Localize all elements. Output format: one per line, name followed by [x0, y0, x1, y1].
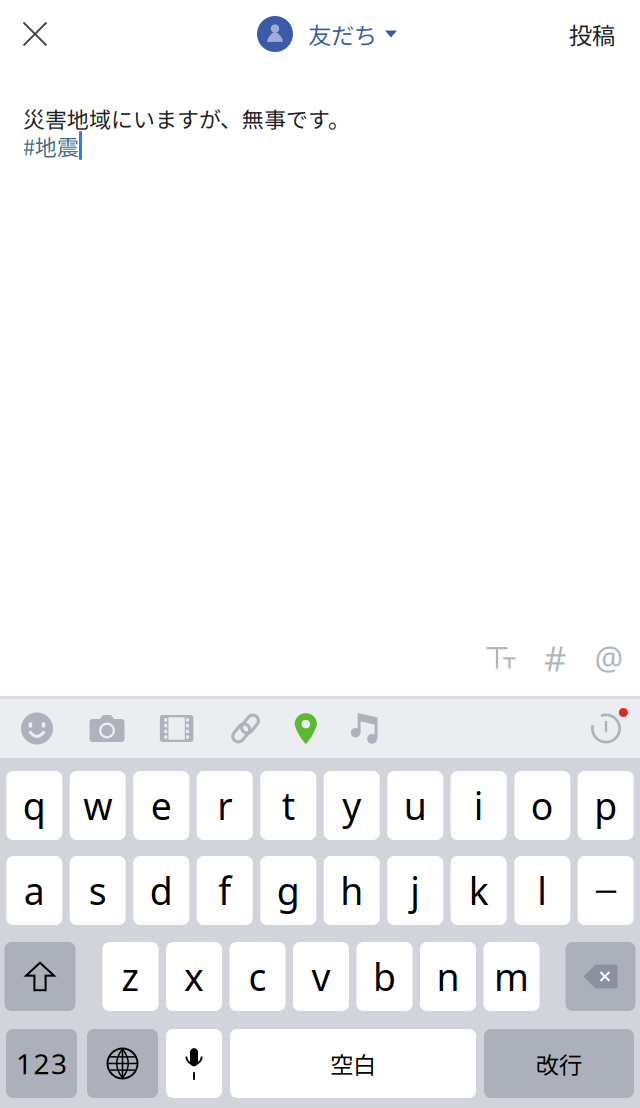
button[interactable]: q — [6, 771, 62, 840]
button[interactable]: y — [324, 771, 380, 840]
button[interactable]: b — [356, 942, 412, 1011]
button[interactable]: 空白 — [230, 1029, 476, 1098]
button[interactable]: z — [102, 942, 158, 1011]
staticText: j — [410, 866, 420, 915]
staticText: i — [474, 781, 484, 830]
staticText: n — [436, 952, 459, 1001]
button[interactable]: Text format — [474, 634, 528, 682]
staticText: d — [150, 866, 173, 915]
staticText: # — [544, 635, 566, 681]
staticText: y — [342, 781, 361, 830]
button[interactable]: t — [260, 771, 316, 840]
button[interactable]: d — [133, 856, 189, 925]
staticText: w — [83, 781, 112, 830]
staticText: 投稿 — [569, 17, 615, 51]
button[interactable]: Camera — [85, 705, 129, 752]
button[interactable]: r — [197, 771, 253, 840]
staticText: ー — [593, 872, 618, 909]
button[interactable]: n — [420, 942, 476, 1011]
button[interactable]: c — [229, 942, 285, 1011]
button[interactable]: Delete — [565, 942, 635, 1011]
staticText: u — [404, 781, 427, 830]
button[interactable]: k — [451, 856, 507, 925]
staticText: 改行 — [536, 1047, 582, 1080]
button[interactable]: Next keyboard — [87, 1029, 158, 1098]
button[interactable]: ー — [578, 856, 634, 925]
button[interactable]: s — [70, 856, 126, 925]
button[interactable]: l — [514, 856, 570, 925]
button[interactable]: Hashtag — [528, 634, 582, 682]
button[interactable]: e — [133, 771, 189, 840]
staticText: x — [184, 952, 204, 1001]
button[interactable]: Location — [284, 705, 328, 752]
button[interactable]: a — [6, 856, 62, 925]
button[interactable]: o — [514, 771, 570, 840]
staticText: v — [311, 952, 330, 1001]
staticText: c — [248, 952, 266, 1001]
staticText: z — [121, 952, 139, 1001]
staticText: l — [537, 866, 547, 915]
button[interactable]: Video — [155, 705, 199, 752]
button[interactable]: 123 — [6, 1029, 77, 1098]
staticText: m — [494, 952, 529, 1001]
button[interactable]: m — [483, 942, 539, 1011]
staticText: g — [277, 866, 300, 915]
staticText: 空白 — [330, 1047, 376, 1080]
staticText: 123 — [16, 1045, 67, 1082]
staticText: p — [594, 781, 617, 830]
staticText: #地震 — [23, 130, 79, 162]
staticText: s — [89, 866, 107, 915]
button[interactable]: Close — [0, 0, 70, 69]
button[interactable]: Dictation — [166, 1029, 222, 1098]
staticText: a — [24, 866, 45, 915]
button[interactable]: i — [451, 771, 507, 840]
staticText: @ — [594, 637, 623, 679]
button[interactable]: Emoji — [15, 705, 59, 752]
button[interactable]: f — [197, 856, 253, 925]
staticText: o — [531, 781, 554, 830]
staticText: 災害地域にいますが、無事です。 — [23, 102, 350, 134]
staticText: f — [218, 866, 231, 915]
staticText: b — [373, 952, 396, 1001]
button[interactable]: 投稿 — [544, 0, 640, 69]
staticText: h — [340, 866, 363, 915]
button[interactable]: Mention — [582, 634, 636, 682]
button[interactable]: x — [166, 942, 222, 1011]
button[interactable]: Link — [224, 705, 268, 752]
button[interactable]: 改行 — [484, 1029, 634, 1098]
staticText: k — [469, 866, 489, 915]
staticText: t — [282, 781, 295, 830]
button[interactable]: h — [324, 856, 380, 925]
button[interactable]: Shift — [4, 942, 75, 1011]
staticText: 友だち — [308, 17, 377, 51]
button[interactable]: Music — [343, 705, 387, 752]
button[interactable]: 友だち — [251, 4, 403, 64]
staticText: r — [217, 781, 232, 830]
button[interactable]: p — [578, 771, 634, 840]
button[interactable]: u — [387, 771, 443, 840]
staticText: q — [23, 781, 46, 830]
button[interactable]: w — [70, 771, 126, 840]
button[interactable]: v — [293, 942, 349, 1011]
staticText: e — [151, 781, 172, 830]
button[interactable]: Schedule — [584, 705, 628, 752]
button[interactable]: g — [260, 856, 316, 925]
button[interactable]: j — [387, 856, 443, 925]
